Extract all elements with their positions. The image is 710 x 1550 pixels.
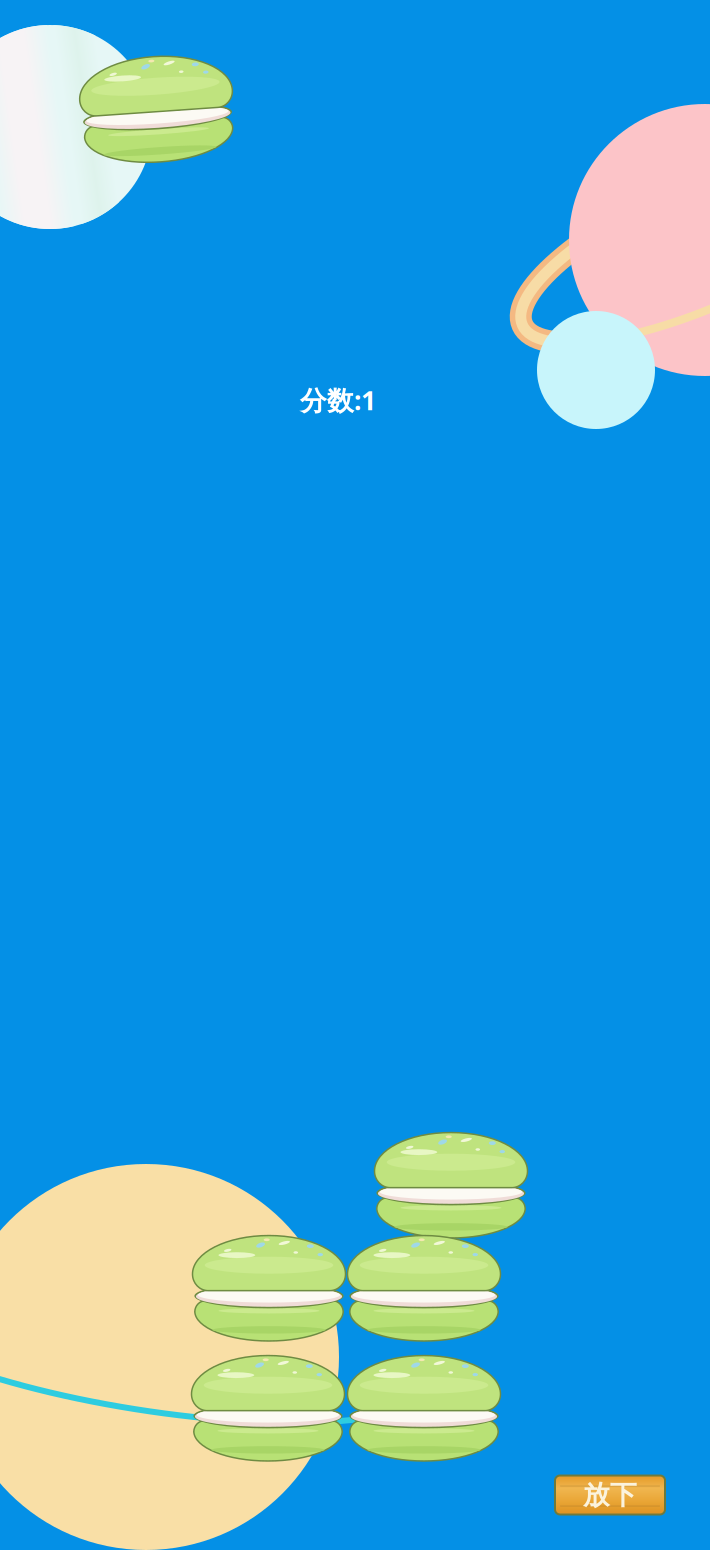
- staticText: 分数:1: [300, 382, 376, 418]
- staticText: 放下: [583, 1479, 637, 1511]
- button[interactable]: 放下: [552, 1472, 668, 1517]
